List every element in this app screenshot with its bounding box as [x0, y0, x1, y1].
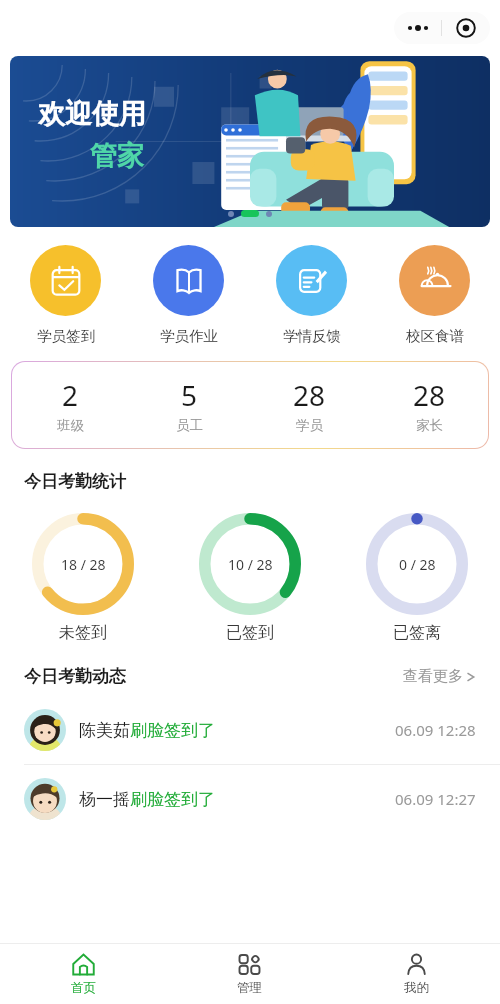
staticText: 员工 — [176, 417, 203, 434]
staticText: 06.09 12:27 — [395, 789, 476, 809]
staticText: 18 / 28 — [61, 555, 106, 574]
staticText: 校区食谱 — [406, 327, 464, 345]
staticText: 28 — [413, 376, 446, 414]
staticText: 学情反馈 — [283, 327, 341, 345]
staticText: 5 — [181, 376, 198, 414]
button[interactable]: 陈美茹刷脸签到了 — [0, 696, 500, 764]
button[interactable]: 学员作业 — [127, 245, 250, 345]
staticText: 杨一摇刷脸签到了 — [79, 789, 215, 810]
button[interactable]: 首页 — [0, 944, 166, 1004]
staticText: 学员作业 — [160, 327, 218, 345]
button[interactable]: 我的 — [333, 944, 500, 1004]
staticText: 欢迎使用 — [38, 97, 146, 131]
staticText: 已签离 — [393, 623, 441, 643]
staticText: 管家 — [90, 139, 144, 173]
staticText: 管理 — [237, 980, 262, 996]
button[interactable]: 查看更多 — [403, 663, 476, 690]
staticText: 28 — [293, 376, 326, 414]
staticText: 今日考勤动态 — [24, 666, 126, 687]
staticText: 查看更多 — [403, 667, 463, 686]
button[interactable]: 校区食谱 — [373, 245, 496, 345]
staticText: 首页 — [71, 980, 96, 996]
staticText: 06.09 12:28 — [395, 720, 476, 740]
button[interactable]: 学情反馈 — [250, 245, 373, 345]
button[interactable]: 28 — [369, 376, 489, 434]
button[interactable]: 2 — [11, 376, 130, 434]
button[interactable]: More — [394, 12, 441, 44]
staticText: 已签到 — [226, 623, 274, 643]
staticText: 陈美茹刷脸签到了 — [79, 720, 215, 741]
staticText: 学员 — [296, 417, 323, 434]
button[interactable]: 18 / 28 — [0, 510, 166, 643]
button[interactable]: 欢迎使用 — [10, 56, 490, 227]
staticText: 班级 — [57, 417, 84, 434]
button[interactable]: 28 — [249, 376, 369, 434]
staticText: 未签到 — [59, 623, 107, 643]
button[interactable]: 5 — [130, 376, 249, 434]
button[interactable]: 10 / 28 — [166, 510, 333, 643]
button[interactable]: 管理 — [166, 944, 333, 1004]
staticText: 10 / 28 — [228, 555, 273, 574]
button[interactable]: 0 / 28 — [333, 510, 500, 643]
staticText: 我的 — [404, 980, 429, 996]
staticText: 2 — [62, 376, 79, 414]
staticText: 家长 — [416, 417, 443, 434]
staticText: 学员签到 — [37, 327, 95, 345]
button[interactable]: 杨一摇刷脸签到了 — [0, 765, 500, 833]
button[interactable]: 学员签到 — [4, 245, 127, 345]
button[interactable]: Target — [442, 12, 490, 44]
staticText: 0 / 28 — [399, 555, 436, 574]
staticText: 今日考勤统计 — [24, 471, 126, 492]
